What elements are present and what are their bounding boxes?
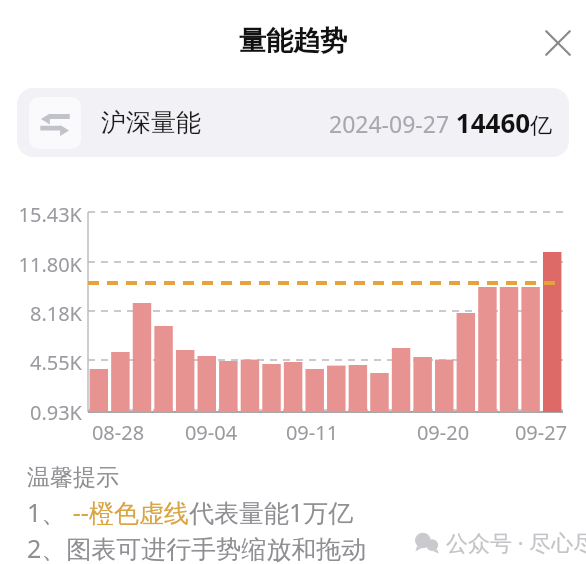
staticText: 09-04 bbox=[171, 419, 251, 446]
button[interactable]: Close bbox=[534, 19, 582, 67]
staticText: 09-20 bbox=[403, 419, 483, 446]
staticText: 15.43K bbox=[8, 201, 82, 228]
staticText: 沪深量能 bbox=[101, 107, 201, 138]
staticText: 2024-09-27 14460亿 bbox=[329, 105, 553, 140]
staticText: 09-27 bbox=[501, 419, 581, 446]
staticText: 量能趋势 bbox=[239, 24, 347, 58]
button[interactable]: 沪深量能 bbox=[17, 88, 569, 157]
staticText: 8.18K bbox=[8, 300, 82, 327]
button[interactable]: 公众号 · 尽心尽责 bbox=[414, 527, 586, 557]
staticText: 09-11 bbox=[272, 419, 352, 446]
staticText: 温馨提示 bbox=[27, 463, 119, 492]
staticText: 4.55K bbox=[8, 349, 82, 376]
staticText: 公众号 · 尽心尽责 bbox=[446, 527, 586, 557]
staticText: 0.93K bbox=[8, 399, 82, 426]
staticText: 08-28 bbox=[78, 419, 158, 446]
staticText: 11.80K bbox=[8, 251, 82, 278]
staticText: 1、 --橙色虚线代表量能1万亿 bbox=[27, 495, 354, 529]
staticText: 2、图表可进行手势缩放和拖动 bbox=[27, 531, 367, 564]
